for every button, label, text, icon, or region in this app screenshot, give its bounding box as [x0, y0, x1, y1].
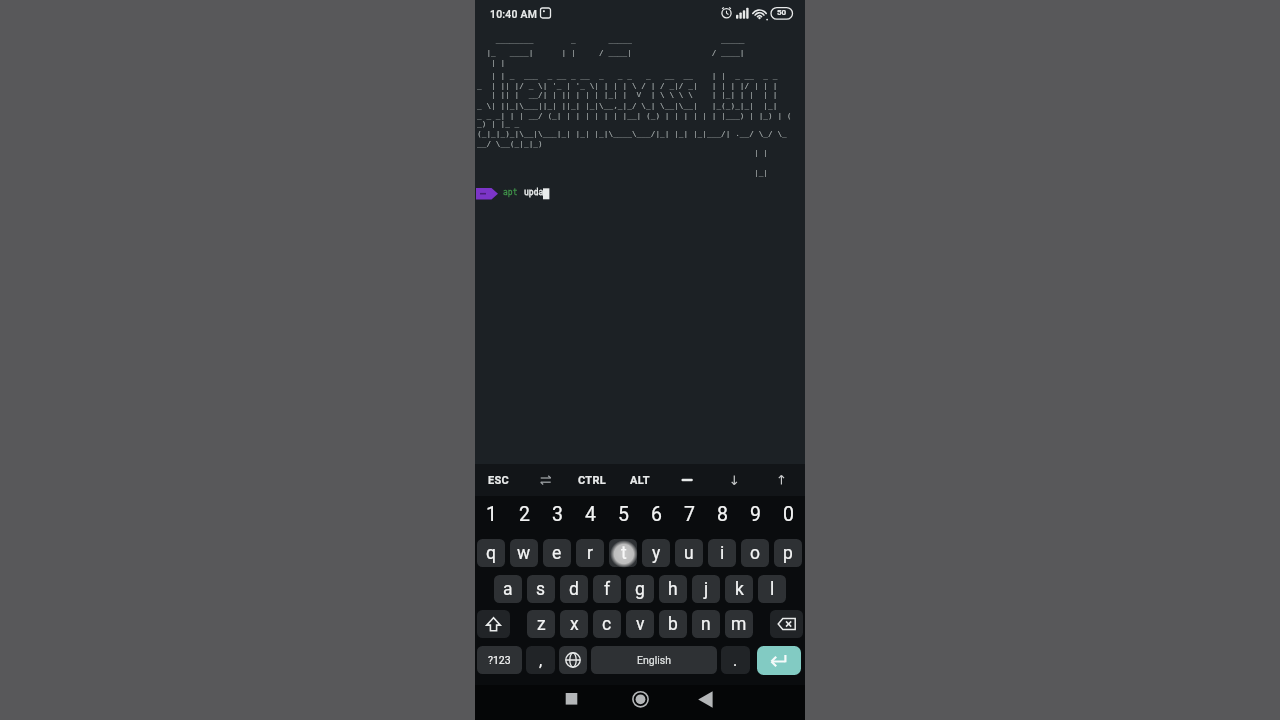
button[interactable]: ESC: [475, 464, 522, 496]
button[interactable]: [477, 610, 510, 638]
button[interactable]: [609, 539, 637, 567]
button[interactable]: h: [659, 575, 687, 603]
staticText: z: [537, 614, 546, 635]
button[interactable]: y: [642, 539, 670, 567]
button[interactable]: [559, 646, 587, 674]
staticText: 1: [486, 503, 497, 526]
button[interactable]: o: [741, 539, 769, 567]
staticText: p: [783, 543, 793, 564]
staticText: r: [587, 543, 593, 564]
button[interactable]: CTRL: [569, 464, 616, 496]
button[interactable]: 7: [676, 500, 703, 529]
staticText: 10:40 AM: [490, 8, 538, 20]
staticText: c: [602, 614, 612, 635]
staticText: o: [750, 543, 760, 564]
button[interactable]: [522, 464, 569, 496]
button[interactable]: 4: [577, 500, 604, 529]
button[interactable]: 3: [544, 500, 571, 529]
button[interactable]: d: [560, 575, 588, 603]
staticText: 8: [717, 503, 728, 526]
staticText: | | _ ___ _ __ _ __ _ _ _ _ __ __ | | _ …: [477, 71, 778, 80]
staticText: | || | __/| | || | | | |_| | V | \ \ \ \…: [477, 90, 778, 99]
staticText: u: [684, 543, 694, 564]
button[interactable]: q: [477, 539, 505, 567]
staticText: a: [503, 579, 513, 600]
button[interactable]: English: [591, 646, 717, 674]
staticText: 5: [618, 503, 629, 526]
staticText: f: [604, 579, 611, 600]
button[interactable]: [697, 691, 714, 708]
button[interactable]: g: [626, 575, 654, 603]
staticText: q: [486, 543, 496, 564]
staticText: y: [652, 543, 661, 564]
staticText: |_|: [477, 168, 769, 177]
button[interactable]: ,: [526, 646, 555, 674]
staticText: 6: [651, 503, 662, 526]
staticText: 4: [585, 503, 596, 526]
button[interactable]: [770, 610, 803, 638]
button[interactable]: p: [774, 539, 802, 567]
button[interactable]: b: [659, 610, 687, 638]
staticText: n: [701, 614, 711, 635]
button[interactable]: l: [758, 575, 786, 603]
button[interactable]: a: [494, 575, 522, 603]
button[interactable]: f: [593, 575, 621, 603]
button[interactable]: [565, 691, 581, 707]
staticText: CTRL: [578, 474, 607, 487]
staticText: k: [735, 579, 744, 600]
button[interactable]: 5: [610, 500, 637, 529]
button[interactable]: [757, 646, 801, 675]
staticText: s: [536, 579, 546, 600]
button[interactable]: [664, 464, 711, 496]
button[interactable]: 8: [709, 500, 736, 529]
staticText: ALT: [630, 474, 650, 487]
staticText: 9: [750, 503, 761, 526]
button[interactable]: u: [675, 539, 703, 567]
staticText: apt: [503, 188, 518, 197]
button[interactable]: j: [692, 575, 720, 603]
button[interactable]: [711, 464, 758, 496]
button[interactable]: k: [725, 575, 753, 603]
button[interactable]: 0: [775, 500, 802, 529]
staticText: upda: [524, 188, 544, 197]
button[interactable]: s: [527, 575, 555, 603]
staticText: English: [637, 654, 671, 666]
staticText: _ \| ||_|\___||_| ||_| |_|\__,_|_/ \_| \…: [477, 101, 778, 110]
button[interactable]: [632, 691, 649, 708]
staticText: ESC: [488, 474, 510, 487]
button[interactable]: v: [626, 610, 654, 638]
staticText: j: [704, 579, 709, 600]
staticText: 7: [684, 503, 695, 526]
staticText: d: [569, 579, 579, 600]
staticText: ?123: [488, 654, 511, 666]
staticText: h: [668, 579, 678, 600]
button[interactable]: r: [576, 539, 604, 567]
button[interactable]: x: [560, 610, 588, 638]
staticText: t: [621, 543, 627, 564]
staticText: 50: [777, 8, 787, 17]
button[interactable]: .: [721, 646, 750, 674]
button[interactable]: w: [510, 539, 538, 567]
button[interactable]: n: [692, 610, 720, 638]
button[interactable]: e: [543, 539, 571, 567]
button[interactable]: 2: [511, 500, 538, 529]
button[interactable]: [758, 464, 805, 496]
button[interactable]: 1: [478, 500, 505, 529]
staticText: _ | || |/ _ \| '_ | '_ \| | | | \ / | / …: [477, 81, 778, 90]
button[interactable]: z: [527, 610, 555, 638]
staticText: (_|_|_)_|\__|\___|_| |_| |_|\____\___/|_…: [477, 129, 787, 138]
staticText: _) | |_ _: [477, 119, 520, 128]
button[interactable]: i: [708, 539, 736, 567]
staticText: x: [570, 614, 579, 635]
button[interactable]: c: [593, 610, 621, 638]
button[interactable]: ?123: [477, 646, 522, 674]
staticText: i: [720, 543, 725, 564]
staticText: m: [731, 614, 747, 635]
button[interactable]: m: [725, 610, 753, 638]
button[interactable]: 6: [643, 500, 670, 529]
staticText: l: [770, 579, 775, 600]
staticText: ,: [539, 651, 543, 670]
staticText: 0: [783, 503, 794, 526]
button[interactable]: 9: [742, 500, 769, 529]
button[interactable]: ALT: [616, 464, 663, 496]
